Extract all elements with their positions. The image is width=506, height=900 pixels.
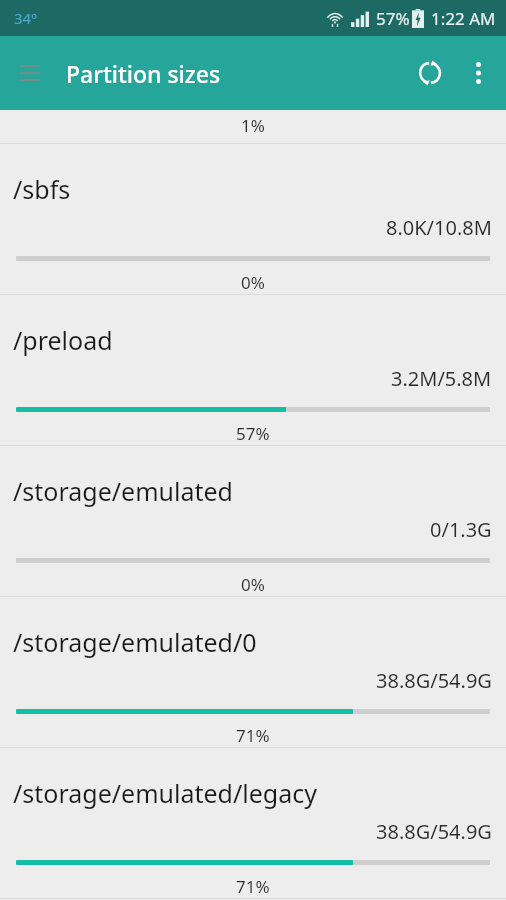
- button[interactable]: /sbfs: [0, 144, 506, 294]
- button[interactable]: Refresh: [404, 47, 456, 99]
- button[interactable]: Navigation menu: [8, 51, 52, 95]
- button[interactable]: /preload: [0, 295, 506, 445]
- staticText: 57%: [376, 7, 410, 30]
- staticText: 71%: [236, 875, 270, 898]
- button[interactable]: 1%: [0, 110, 506, 143]
- staticText: /storage/emulated/legacy: [13, 776, 317, 810]
- staticText: Partition sizes: [66, 58, 221, 89]
- staticText: 0/1.3G: [430, 516, 492, 543]
- button[interactable]: /storage/emulated/legacy: [0, 748, 506, 898]
- staticText: 34º: [14, 8, 37, 28]
- staticText: 38.8G/54.9G: [376, 667, 492, 694]
- staticText: 57%: [236, 422, 270, 445]
- staticText: 0%: [241, 271, 265, 294]
- button[interactable]: /storage/emulated/0: [0, 597, 506, 747]
- staticText: 8.0K/10.8M: [386, 214, 492, 241]
- button[interactable]: /storage/emulated: [0, 446, 506, 596]
- staticText: 38.8G/54.9G: [376, 818, 492, 845]
- staticText: /preload: [13, 323, 113, 357]
- button[interactable]: More options: [456, 51, 500, 95]
- staticText: /storage/emulated: [13, 474, 233, 508]
- staticText: 3.2M/5.8M: [391, 365, 492, 392]
- staticText: /storage/emulated/0: [13, 625, 257, 659]
- staticText: 71%: [236, 724, 270, 747]
- staticText: /sbfs: [13, 172, 71, 206]
- staticText: 0%: [241, 573, 265, 596]
- staticText: 1%: [241, 114, 265, 137]
- staticText: 1:22 AM: [431, 7, 496, 30]
